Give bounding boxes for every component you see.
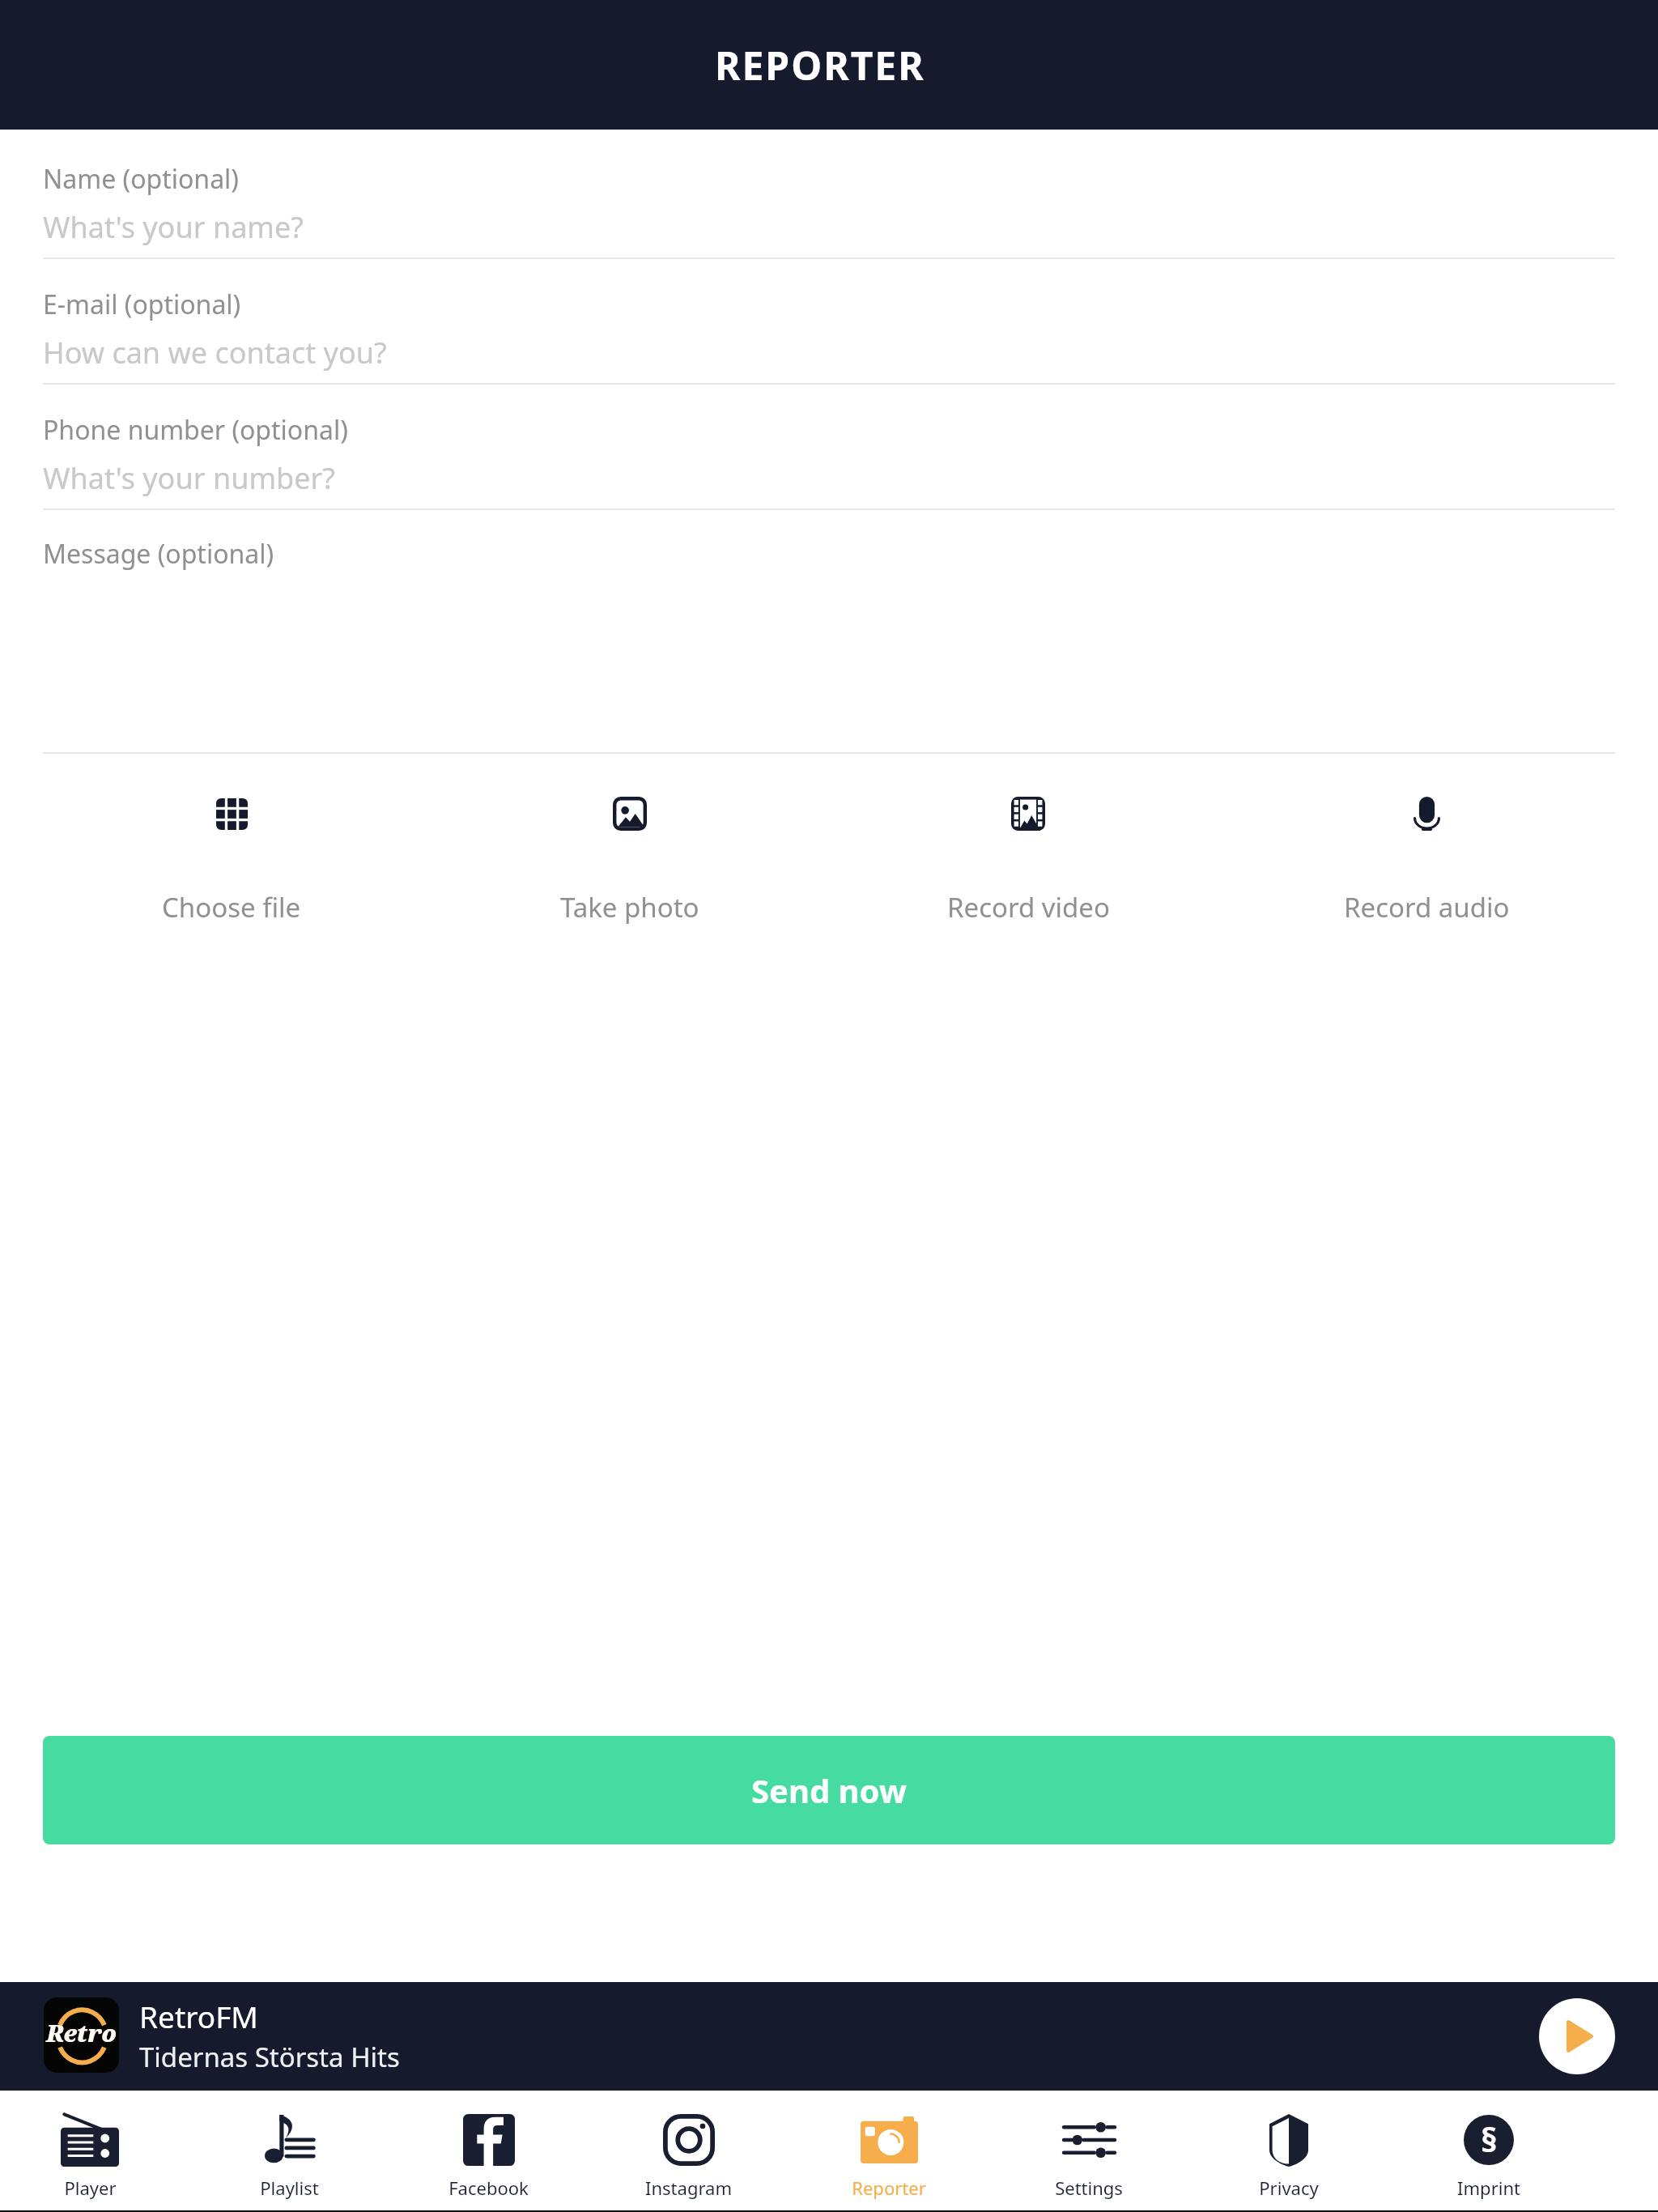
button[interactable]: Name (optional) <box>43 130 1615 259</box>
button[interactable]: Reporter <box>789 2091 988 2212</box>
button[interactable]: Play <box>1539 1998 1615 2074</box>
staticText: RetroFM <box>139 1996 258 2036</box>
button[interactable]: Privacy <box>1188 2091 1388 2212</box>
staticText: Instagram <box>645 2176 732 2200</box>
staticText: Player <box>64 2176 117 2200</box>
staticText: Phone number (optional) <box>43 412 348 448</box>
button[interactable]: Phone number (optional) <box>43 385 1615 510</box>
staticText: § <box>1481 2116 1498 2162</box>
staticText: How can we contact you? <box>43 333 387 372</box>
staticText: Tidernas Största Hits <box>139 2039 400 2075</box>
button[interactable]: Record video <box>829 797 1227 925</box>
staticText: Settings <box>1055 2176 1123 2200</box>
button[interactable]: Settings <box>988 2091 1188 2212</box>
staticText: What's your number? <box>43 458 335 498</box>
staticText: Reporter <box>852 2176 926 2200</box>
staticText: Choose file <box>162 889 301 925</box>
button[interactable]: § <box>1388 2091 1588 2212</box>
staticText: Take photo <box>560 889 699 925</box>
button[interactable]: Facebook <box>389 2091 589 2212</box>
staticText: Record video <box>947 889 1110 925</box>
button[interactable]: Take photo <box>431 797 829 925</box>
staticText: Privacy <box>1259 2176 1319 2200</box>
button[interactable]: Retro <box>0 1982 1658 2091</box>
staticText: Message (optional) <box>43 536 274 572</box>
staticText: What's your name? <box>43 207 304 247</box>
staticText: Facebook <box>449 2176 529 2200</box>
button[interactable]: Instagram <box>589 2091 789 2212</box>
staticText: Send now <box>751 1768 908 1812</box>
staticText: E-mail (optional) <box>43 287 241 322</box>
button[interactable]: Send now <box>43 1736 1615 1844</box>
button[interactable]: Record audio <box>1227 797 1626 925</box>
button[interactable]: Player <box>0 2091 189 2212</box>
staticText: Name (optional) <box>43 161 239 197</box>
staticText: Retro <box>46 2017 117 2048</box>
button[interactable]: Message (optional) <box>43 510 1615 754</box>
button[interactable]: Playlist <box>189 2091 389 2212</box>
button[interactable]: E-mail (optional) <box>43 259 1615 385</box>
staticText: Record audio <box>1344 889 1510 925</box>
staticText: Playlist <box>260 2176 319 2200</box>
staticText: Imprint <box>1457 2176 1520 2200</box>
button[interactable]: Choose file <box>32 797 431 925</box>
staticText: REPORTER <box>715 39 925 91</box>
